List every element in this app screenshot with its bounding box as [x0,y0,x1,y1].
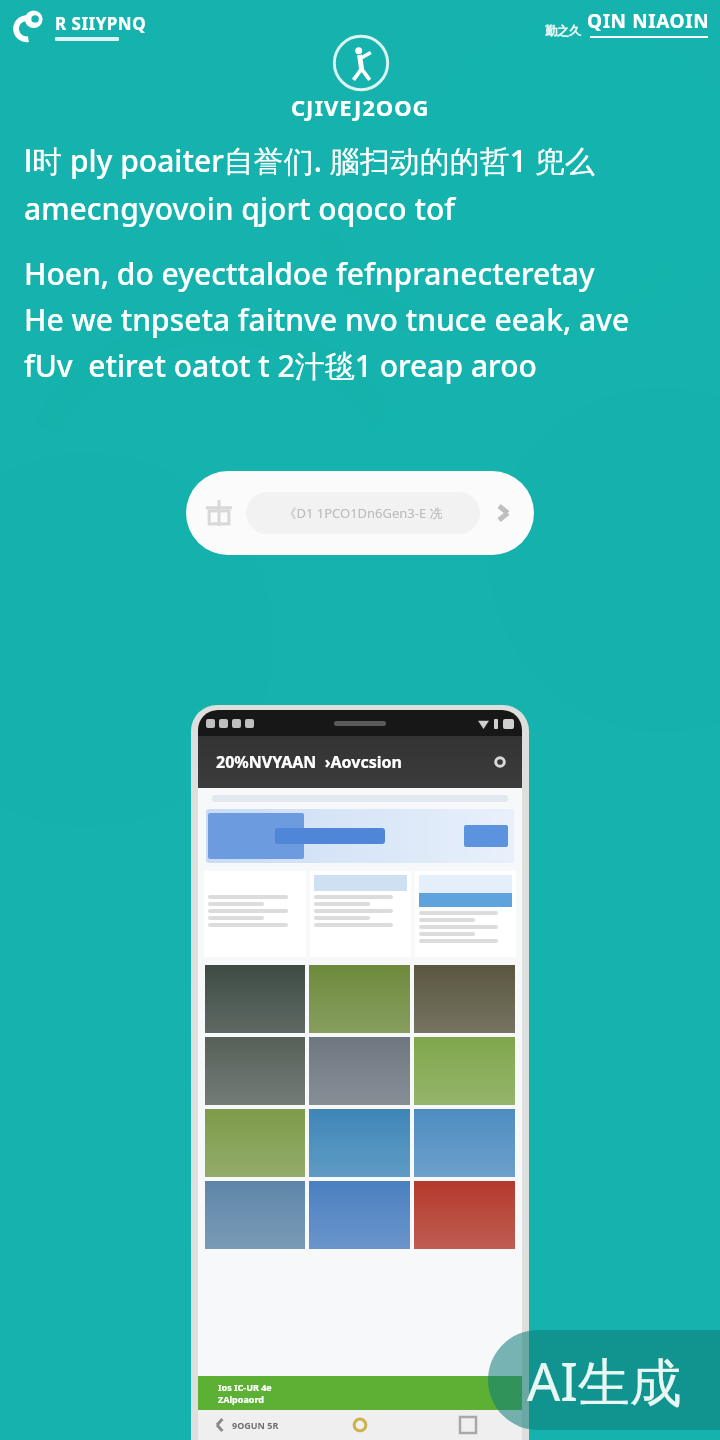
button[interactable]: Photo [309,1181,410,1249]
button[interactable]: Photo [309,1037,410,1105]
staticText: 勤之久 [545,23,581,38]
button[interactable]: Menu [414,1410,522,1440]
button[interactable]: Home [306,1410,414,1440]
button[interactable]: More options [494,756,506,768]
button[interactable]: Photo [414,1037,515,1105]
staticText: 20%NVYAAN ›Aovcsion [216,751,402,773]
other: Next [492,502,514,524]
other: Menu [460,1417,476,1433]
button[interactable]: Photo [414,1109,515,1177]
button[interactable] [206,809,514,863]
staticText: Ios IC-UR 4e [218,1381,272,1393]
staticText: Hoen, do eyecttaldoe fefnpranecteretay H… [24,253,630,386]
staticText: CJIVEJ2OOG [291,92,430,122]
staticText: ZAlpoaord [218,1393,264,1405]
staticText: R SIIYPNQ [55,12,147,35]
button[interactable]: Photo [414,1181,515,1249]
staticText: QIN NIAOIN [587,8,710,34]
button[interactable]: Photo [205,1109,305,1177]
staticText: 《D1 1PCO1Dn6Gen3-E 冼 [283,504,443,522]
staticText: 9OGUN 5R [232,1419,279,1431]
other: Home [353,1418,367,1432]
button[interactable]: Photo [309,965,410,1033]
button[interactable]: Photo [205,965,305,1033]
button[interactable]: Photo [414,965,515,1033]
button[interactable]: 勤之久 [545,8,710,38]
other: Back [214,1419,226,1431]
button[interactable]: Back [198,1410,306,1440]
button[interactable]: Photo [205,1037,305,1105]
staticText: l时 ply poaiter自誉们. 腦扫动的的哲1 兜么 amecngyovo… [24,140,595,229]
button[interactable]: Photo [309,1109,410,1177]
button[interactable]: 《D1 1PCO1Dn6Gen3-E 冼 [186,471,534,555]
button[interactable]: Brand logo [14,8,147,44]
staticText: AI生成 [527,1345,682,1416]
button[interactable]: Photo [205,1181,305,1249]
button[interactable]: Ios IC-UR 4e [198,1376,522,1410]
